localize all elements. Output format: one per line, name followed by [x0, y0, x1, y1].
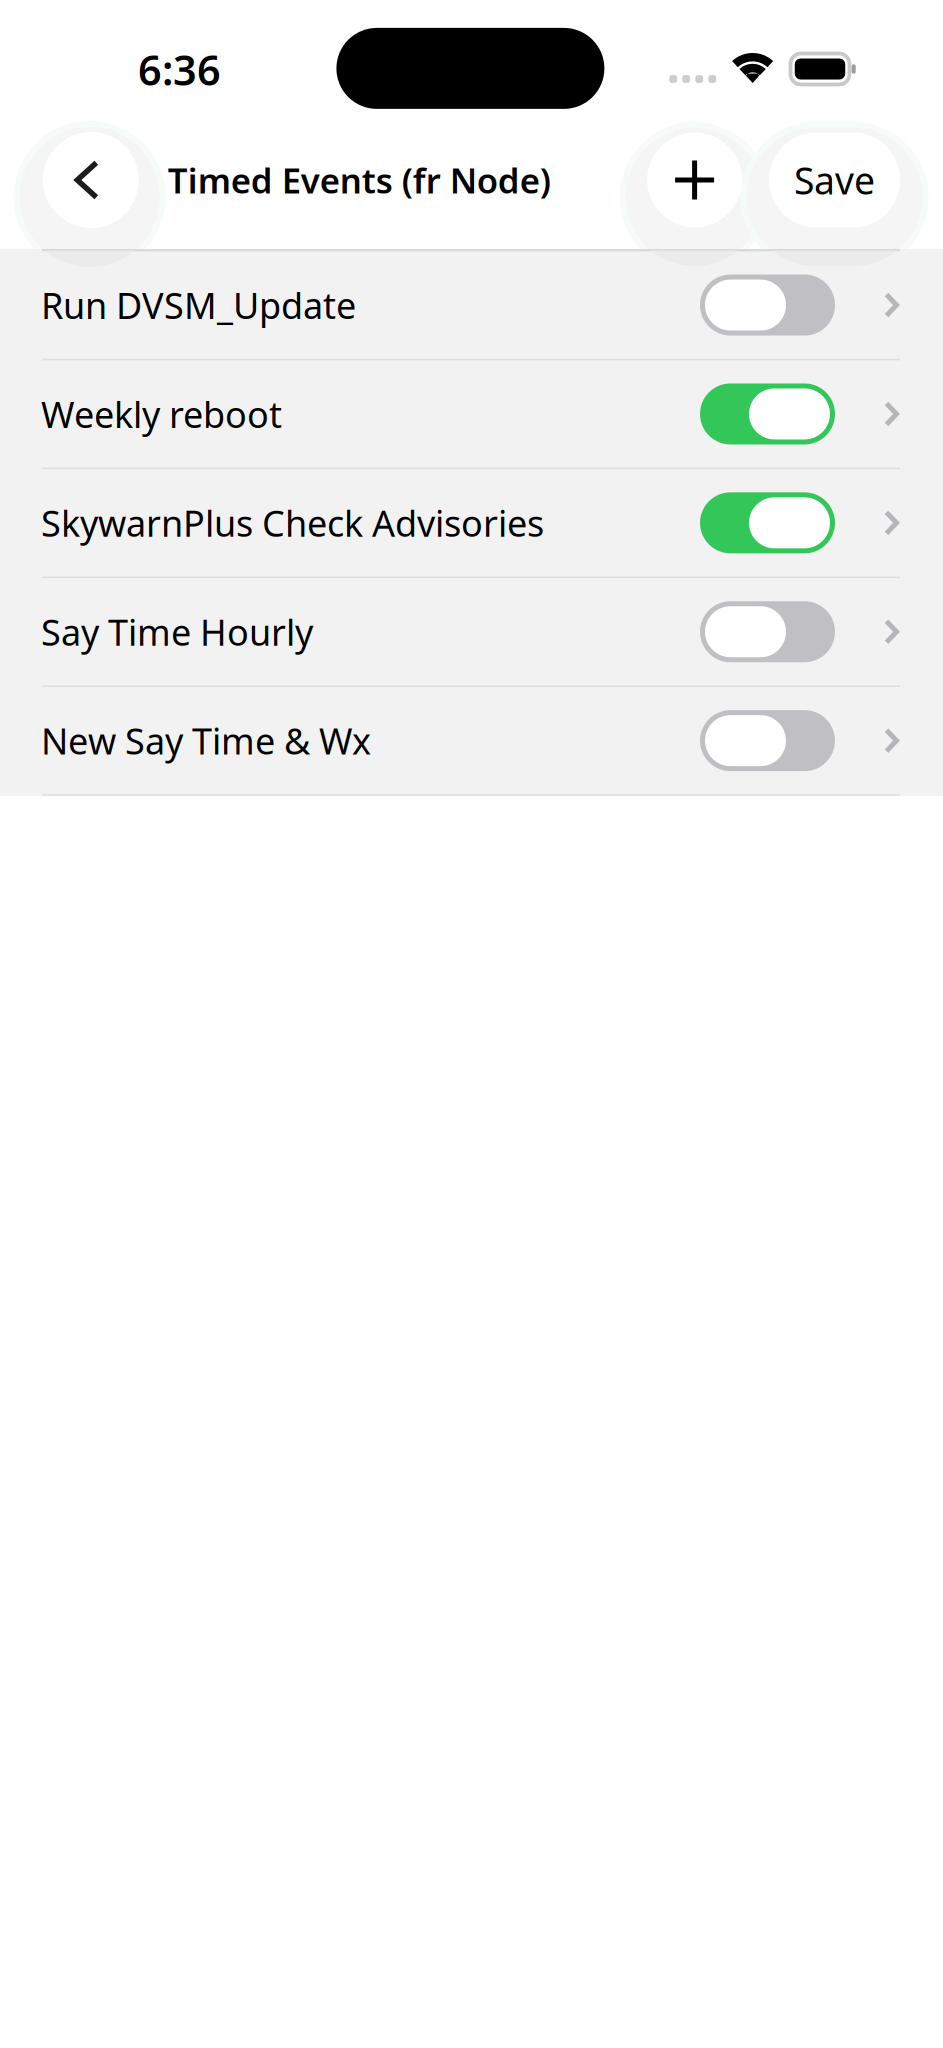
staticText: Run DVSM_Update: [41, 281, 356, 329]
staticText: New Say Time & Wx: [41, 717, 371, 764]
staticText: Timed Events (fr Node): [168, 157, 551, 203]
button[interactable]: Add: [647, 132, 742, 227]
staticText: Save: [794, 155, 875, 205]
button[interactable]: SkywarnPlus Check Advisories: [0, 469, 943, 578]
button[interactable]: Save: [769, 132, 900, 227]
button[interactable]: Weekly reboot: [0, 360, 943, 469]
button[interactable]: Say Time Hourly: [0, 578, 943, 687]
button[interactable]: Back: [43, 132, 139, 228]
staticText: Weekly reboot: [41, 390, 282, 438]
button[interactable]: Run DVSM_Update: [0, 251, 943, 360]
button[interactable]: New Say Time & Wx: [0, 687, 943, 796]
staticText: SkywarnPlus Check Advisories: [41, 499, 544, 547]
staticText: 6:36: [138, 42, 221, 97]
staticText: Say Time Hourly: [41, 608, 313, 656]
